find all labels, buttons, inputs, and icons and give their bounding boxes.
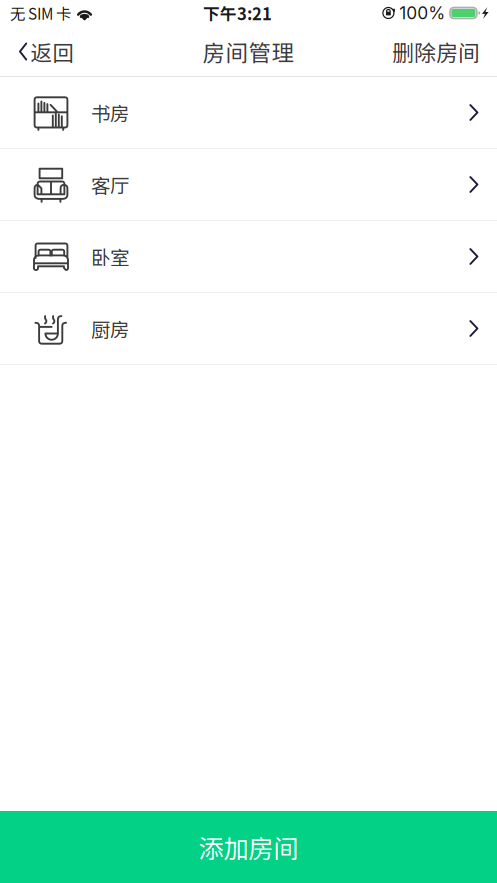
- staticText: 下午3:21: [203, 1, 272, 25]
- button[interactable]: 卧室: [0, 221, 497, 293]
- button[interactable]: 客厅: [0, 149, 497, 221]
- staticText: 客厅: [91, 170, 129, 199]
- staticText: 厨房: [91, 314, 129, 343]
- staticText: 房间管理: [202, 35, 294, 68]
- staticText: 返回: [30, 36, 74, 67]
- button[interactable]: 厨房: [0, 293, 497, 365]
- button[interactable]: 书房: [0, 77, 497, 149]
- button[interactable]: 删除房间: [382, 29, 497, 73]
- staticText: 无 SIM 卡: [10, 2, 71, 24]
- staticText: 卧室: [91, 242, 129, 271]
- staticText: 100%: [399, 2, 445, 23]
- staticText: 添加房间: [198, 829, 298, 865]
- button[interactable]: 添加房间: [0, 811, 497, 883]
- staticText: 书房: [91, 98, 129, 127]
- button[interactable]: 返回: [0, 29, 84, 73]
- staticText: 删除房间: [392, 36, 480, 67]
